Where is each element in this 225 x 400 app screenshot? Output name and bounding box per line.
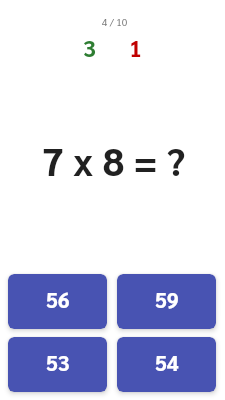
button[interactable]: 53: [8, 337, 107, 392]
staticText: 53: [46, 349, 70, 376]
staticText: 7 x 8 = ?: [1, 134, 225, 185]
staticText: 4 / 10: [2, 15, 225, 28]
staticText: 59: [155, 286, 179, 313]
button[interactable]: 56: [8, 274, 107, 329]
button[interactable]: 59: [117, 274, 216, 329]
staticText: 1: [129, 32, 142, 62]
staticText: 3: [83, 32, 96, 62]
staticText: 54: [155, 349, 179, 376]
button[interactable]: 54: [117, 337, 216, 392]
staticText: 56: [46, 286, 70, 313]
